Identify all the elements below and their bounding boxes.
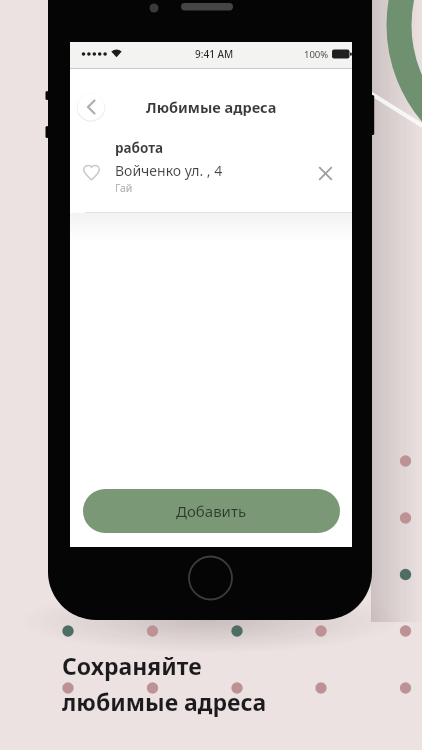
staticText: 100% (304, 48, 329, 61)
staticText: Сохраняйте (62, 650, 202, 681)
staticText: Гай (115, 181, 133, 195)
button[interactable] (312, 160, 339, 187)
staticText: Любимые адреса (146, 97, 277, 117)
staticText: Добавить (176, 501, 247, 521)
staticText: 9:41 AM (195, 47, 234, 61)
button[interactable] (76, 92, 106, 122)
button[interactable]: Добавить (83, 489, 340, 533)
staticText: работа (115, 139, 164, 157)
staticText: Войченко ул. , 4 (115, 161, 223, 180)
button[interactable]: работа (70, 134, 352, 212)
staticText: любимые адреса (62, 686, 267, 717)
